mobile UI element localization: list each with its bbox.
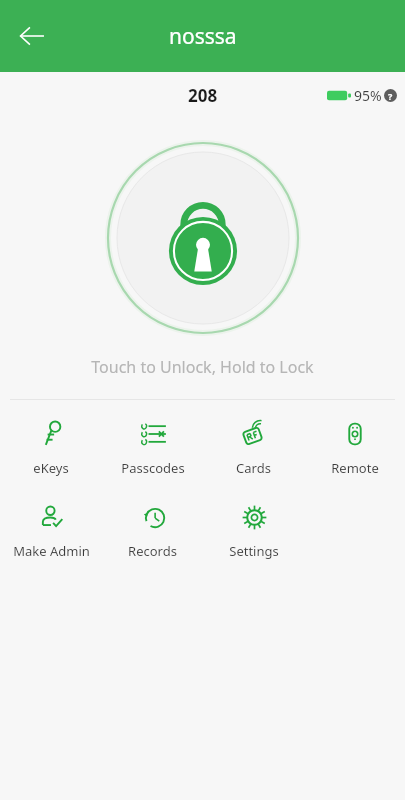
button[interactable]: Touch to Unlock, Hold to Lock: [107, 142, 299, 334]
staticText: Touch to Unlock, Hold to Lock: [0, 356, 405, 378]
staticText: Make Admin: [13, 542, 90, 560]
staticText: Records: [128, 542, 177, 560]
staticText: Settings: [229, 542, 279, 560]
staticText: 208: [188, 84, 218, 107]
button[interactable]: Back: [8, 12, 56, 60]
staticText: 95%: [354, 86, 382, 105]
staticText: nosssa: [169, 22, 237, 51]
button[interactable]: Records: [102, 497, 203, 564]
button[interactable]: 95%: [327, 86, 397, 105]
button[interactable]: Passcodes: [102, 414, 203, 481]
staticText: Passcodes: [121, 459, 185, 477]
button[interactable]: Make Admin: [0, 497, 102, 564]
button[interactable]: eKeys: [0, 414, 102, 481]
button[interactable]: Settings: [203, 497, 304, 564]
staticText: Remote: [331, 459, 379, 477]
button[interactable]: Cards: [203, 414, 304, 481]
button[interactable]: Remote: [304, 414, 405, 481]
staticText: Cards: [236, 459, 271, 477]
staticText: ?: [388, 90, 393, 102]
other: Help: [384, 89, 397, 102]
staticText: eKeys: [33, 459, 69, 477]
